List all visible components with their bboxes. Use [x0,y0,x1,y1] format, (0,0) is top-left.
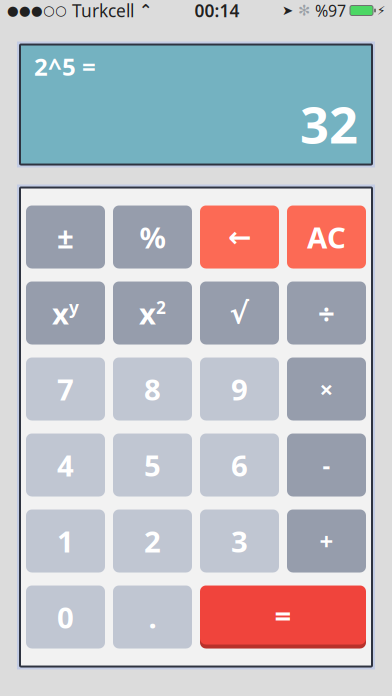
button[interactable]: ± [26,205,105,268]
button[interactable]: . [113,585,192,648]
button[interactable]: 2 [113,509,192,572]
staticText: 32 [300,90,358,158]
button[interactable]: 5 [113,433,192,496]
staticText: 3 [231,521,248,560]
button[interactable]: √ [200,281,279,344]
staticText: y [69,296,79,319]
button[interactable]: ← [200,205,279,268]
button[interactable]: x [113,281,192,344]
staticText: 2 [156,296,166,319]
staticText: x [139,293,156,332]
button[interactable]: 1 [26,509,105,572]
staticText: . [148,597,156,636]
button[interactable]: 4 [26,433,105,496]
staticText: Turkcell [72,0,134,22]
button[interactable]: - [287,433,366,496]
staticText: % [139,217,165,256]
staticText: 9 [231,369,248,408]
staticText: 5 [144,445,161,484]
staticText: 8 [144,369,161,408]
button[interactable]: + [287,509,366,572]
staticText: ●●●○○ [7,3,67,18]
staticText: %97 [315,0,346,21]
button[interactable]: = [200,585,366,648]
staticText: × [319,373,333,405]
staticText: 2 [144,521,161,560]
button[interactable]: ÷ [287,281,366,344]
button[interactable]: 9 [200,357,279,420]
staticText: 0 [57,597,74,636]
button[interactable]: 7 [26,357,105,420]
button[interactable]: 0 [26,585,105,648]
button[interactable]: 6 [200,433,279,496]
staticText: 4 [57,445,74,484]
button[interactable]: 3 [200,509,279,572]
staticText: √ [229,296,249,330]
staticText: ➤ [282,3,293,18]
staticText: AC [307,217,346,256]
button[interactable]: % [113,205,192,268]
staticText: ± [57,217,74,256]
staticText: ✻ [298,2,310,19]
staticText: ← [228,221,251,253]
staticText: - [322,449,330,481]
button[interactable]: 8 [113,357,192,420]
staticText: ÷ [318,293,335,332]
staticText: x [52,293,69,332]
button[interactable]: AC [287,205,366,268]
staticText: + [319,525,333,557]
staticText: ⌃ [139,1,152,20]
staticText: 00:14 [194,0,239,22]
staticText: 7 [57,369,74,408]
staticText: 6 [231,445,248,484]
staticText: 2^5 = [34,50,96,82]
button[interactable]: × [287,357,366,420]
staticText: ⚡︎ [377,4,385,17]
staticText: = [274,595,291,634]
button[interactable]: x [26,281,105,344]
staticText: 1 [57,521,74,560]
